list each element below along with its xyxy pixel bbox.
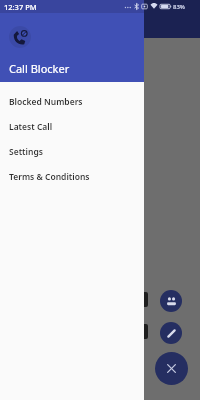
button[interactable]: Close menu — [155, 352, 188, 385]
button[interactable]: Latest Call — [0, 114, 144, 139]
button[interactable]: Blocked Numbers — [0, 89, 144, 114]
staticText: Terms & Conditions — [9, 171, 90, 183]
staticText: Blocked Numbers — [9, 96, 83, 108]
staticText: 83% — [173, 3, 185, 11]
button[interactable]: Settings — [0, 139, 144, 164]
staticText: Settings — [9, 146, 43, 158]
button[interactable]: Block a number manually — [160, 322, 182, 344]
button[interactable]: Block a contact — [160, 290, 182, 312]
staticText: Call Blocker — [9, 61, 70, 76]
staticText: 12:37 PM — [4, 2, 37, 12]
staticText: Latest Call — [9, 121, 53, 133]
button[interactable]: Terms & Conditions — [0, 164, 144, 189]
